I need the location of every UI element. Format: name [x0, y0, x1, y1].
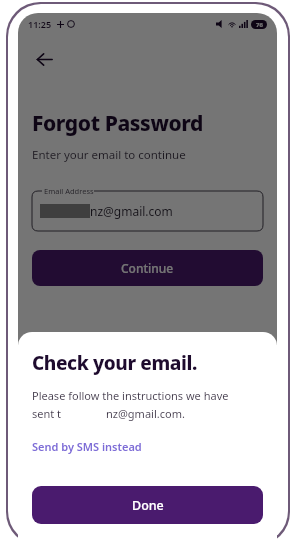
staticText: Enter your email to continue: [32, 147, 186, 163]
button[interactable]: Email Address: [32, 191, 263, 231]
staticText: 76: [256, 21, 263, 29]
staticText: Forgot Password: [32, 109, 204, 138]
button[interactable]: Done: [32, 486, 263, 524]
staticText: Send by SMS instead: [32, 439, 142, 454]
staticText: Check your email.: [32, 350, 197, 376]
staticText: Continue: [121, 260, 174, 276]
staticText: Email Address: [44, 186, 94, 196]
staticText: nz@gmail.com.: [106, 406, 185, 421]
button[interactable]: Continue: [32, 250, 263, 286]
staticText: Done: [132, 497, 164, 514]
staticText: sent t: [32, 406, 62, 421]
staticText: nz@gmail.com: [90, 203, 173, 219]
button[interactable]: Back: [26, 41, 62, 77]
staticText: Please follow the instructions we have: [32, 388, 229, 403]
staticText: 11:25: [28, 18, 52, 30]
button[interactable]: Send by SMS instead: [32, 439, 142, 454]
